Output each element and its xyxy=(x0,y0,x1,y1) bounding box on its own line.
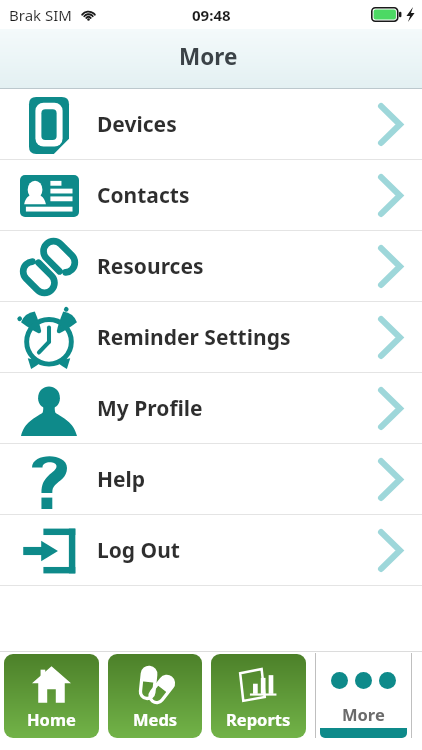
button[interactable]: Devices xyxy=(0,89,422,160)
staticText: More xyxy=(179,41,238,72)
button[interactable]: Log Out xyxy=(0,515,422,586)
staticText: 09:48 xyxy=(192,5,231,25)
staticText: Brak SIM xyxy=(9,5,72,25)
staticText: Help xyxy=(97,465,146,494)
button[interactable]: Meds xyxy=(108,654,202,738)
button[interactable]: Home xyxy=(4,654,99,738)
staticText: Devices xyxy=(97,110,177,139)
button[interactable]: My Profile xyxy=(0,373,422,444)
staticText: Meds xyxy=(133,708,178,730)
staticText: Reports xyxy=(226,708,291,730)
button[interactable]: Reminder Settings xyxy=(0,302,422,373)
button[interactable]: More xyxy=(316,653,411,738)
staticText: More xyxy=(342,703,385,725)
staticText: Contacts xyxy=(97,181,190,210)
staticText: Resources xyxy=(97,252,204,281)
button[interactable]: Contacts xyxy=(0,160,422,231)
button[interactable]: Help xyxy=(0,444,422,515)
staticText: Reminder Settings xyxy=(97,323,291,352)
button[interactable]: Resources xyxy=(0,231,422,302)
button[interactable]: Reports xyxy=(211,654,306,738)
staticText: Log Out xyxy=(97,536,180,565)
staticText: My Profile xyxy=(97,394,203,423)
staticText: Home xyxy=(27,708,76,730)
